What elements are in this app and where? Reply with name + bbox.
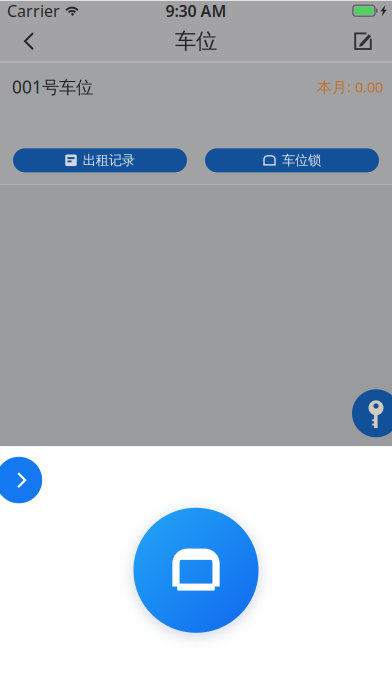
staticText: 车位 (175, 28, 217, 54)
button[interactable]: 车位锁 (205, 148, 379, 172)
button[interactable]: 出租记录 (13, 148, 187, 172)
staticText: 001号车位 (12, 75, 93, 98)
button[interactable]: Key (352, 389, 392, 437)
button[interactable]: Parking lock (133, 508, 258, 633)
staticText: 车位锁 (282, 152, 321, 168)
staticText: 出租记录 (83, 152, 135, 168)
staticText: 9:30 AM (165, 0, 226, 21)
button[interactable]: Show list (0, 457, 42, 503)
button[interactable]: Back (6, 21, 52, 62)
staticText: Carrier (7, 0, 60, 21)
staticText: 本月: 0.00 (317, 77, 383, 97)
button[interactable]: Edit (340, 21, 386, 62)
